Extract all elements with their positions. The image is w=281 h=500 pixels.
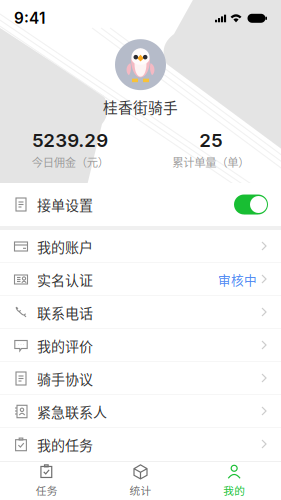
staticText: 今日佣金（元） <box>32 154 109 170</box>
staticText: 9:41 <box>14 9 45 28</box>
staticText: 我的账户 <box>37 236 93 257</box>
staticText: 25 <box>199 129 222 152</box>
button[interactable]: 骑手协议 <box>0 362 281 395</box>
staticText: 骑手协议 <box>37 368 93 389</box>
staticText: 桂香街骑手 <box>103 96 178 117</box>
button[interactable]: 统计 <box>94 461 187 500</box>
button[interactable]: 接单设置开关 <box>234 194 268 214</box>
staticText: 统计 <box>129 482 151 498</box>
staticText: 联系电话 <box>37 302 93 323</box>
staticText: 我的任务 <box>37 434 93 455</box>
button[interactable]: 联系电话 <box>0 296 281 329</box>
button[interactable]: 任务 <box>0 461 94 500</box>
staticText: 实名认证 <box>37 269 93 290</box>
button[interactable]: 紧急联系人 <box>0 395 281 428</box>
staticText: 5239.29 <box>32 129 108 152</box>
staticText: 任务 <box>36 482 58 498</box>
button[interactable]: 我的账户 <box>0 230 281 263</box>
button[interactable]: 我的 <box>187 461 281 500</box>
button[interactable]: 我的任务 <box>0 428 281 461</box>
button[interactable]: 实名认证 <box>0 263 281 296</box>
staticText: 我的评价 <box>37 335 93 356</box>
button[interactable]: 我的评价 <box>0 329 281 362</box>
staticText: 我的 <box>223 482 245 498</box>
staticText: 累计单量（单） <box>172 154 249 170</box>
staticText: 紧急联系人 <box>37 401 107 422</box>
staticText: 审核中 <box>218 270 257 289</box>
staticText: 接单设置 <box>37 194 93 215</box>
